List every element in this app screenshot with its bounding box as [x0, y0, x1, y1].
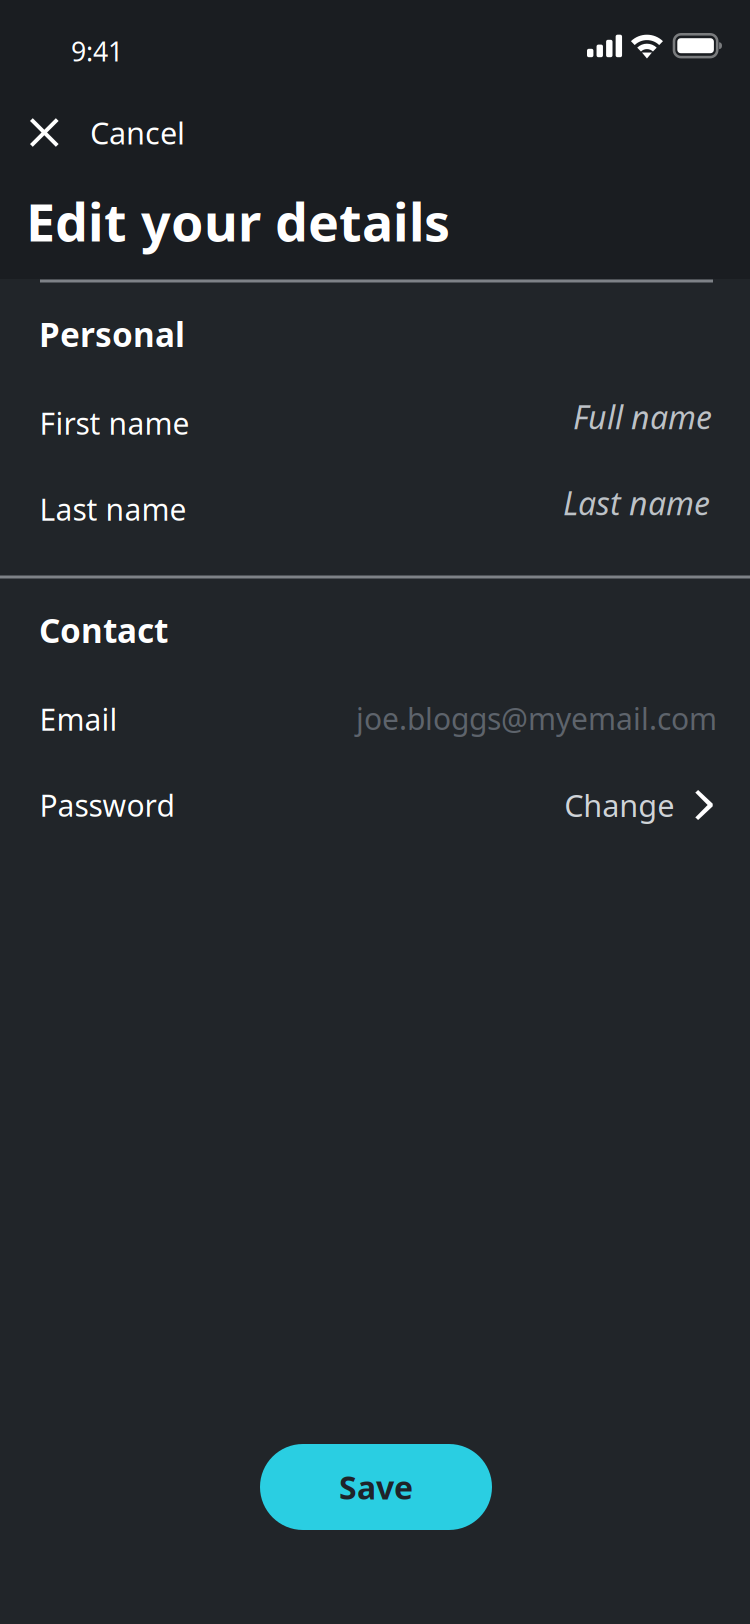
staticText: Last name [563, 481, 710, 525]
button[interactable]: Save [260, 1444, 492, 1530]
staticText: Contact [39, 607, 168, 653]
staticText: Edit your details [26, 186, 450, 257]
staticText: First name [39, 403, 189, 443]
staticText: 9:41 [71, 33, 123, 69]
staticText: Last name [39, 489, 186, 529]
button[interactable]: Email [0, 676, 750, 762]
staticText: Full name [573, 395, 712, 439]
staticText: Change [564, 784, 674, 826]
button[interactable]: Cancel [0, 103, 330, 161]
button[interactable]: First name [0, 380, 750, 466]
staticText: Cancel [90, 112, 185, 153]
staticText: joe.bloggs@myemail.com [356, 698, 717, 739]
staticText: Email [39, 699, 117, 739]
staticText: Personal [39, 311, 185, 357]
staticText: Save [339, 1465, 413, 1509]
staticText: Password [39, 785, 174, 825]
button[interactable]: Last name [0, 466, 750, 552]
button[interactable]: Password [0, 762, 750, 848]
